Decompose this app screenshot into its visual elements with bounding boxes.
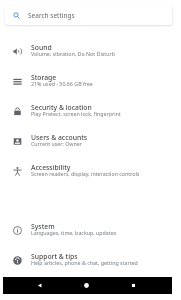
staticText: Screen readers, display, interaction con… [31, 170, 140, 177]
button[interactable]: Recents [125, 277, 142, 294]
staticText: Security & location [31, 103, 92, 112]
button[interactable]: Back [31, 277, 48, 294]
button[interactable]: Support & tips [0, 248, 181, 278]
button[interactable]: Home [78, 277, 95, 294]
button[interactable]: Search settings [5, 6, 172, 25]
staticText: Volume, vibration, Do Not Disturb [31, 50, 115, 57]
staticText: Sound [31, 43, 52, 52]
staticText: Search settings [28, 11, 75, 20]
staticText: Support & tips [31, 252, 78, 261]
staticText: Languages, time, backup, updates [31, 229, 117, 236]
staticText: Users & accounts [31, 133, 88, 142]
staticText: Accessibility [31, 163, 71, 172]
staticText: Current user: Owner [31, 140, 82, 147]
button[interactable]: Security & location [0, 99, 181, 129]
button[interactable]: Users & accounts [0, 129, 181, 159]
staticText: Storage [31, 73, 57, 82]
button[interactable]: Accessibility [0, 159, 181, 189]
staticText: Help articles, phone & chat, getting sta… [31, 259, 138, 266]
staticText: System [31, 222, 55, 231]
button[interactable]: System [0, 218, 181, 248]
button[interactable]: Storage [0, 69, 181, 99]
staticText: 21% used - 50.66 GB free [31, 80, 93, 87]
button[interactable]: Sound [0, 39, 181, 69]
staticText: Play Protect, screen lock, fingerprint [31, 110, 121, 117]
